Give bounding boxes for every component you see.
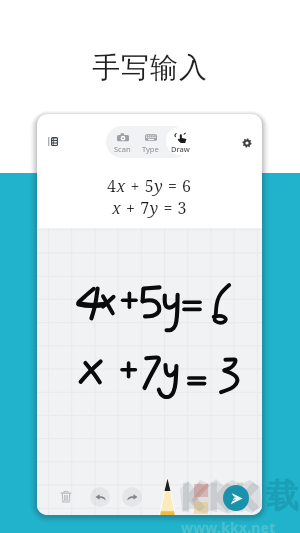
button[interactable]: Delete [54, 485, 78, 509]
button[interactable]: Draw [166, 127, 194, 155]
staticText: Type [142, 144, 159, 154]
button[interactable]: Settings [235, 131, 259, 155]
staticText: Draw [171, 144, 190, 154]
staticText: 载 [266, 475, 299, 516]
staticText: Scan [114, 144, 131, 154]
staticText: 4x + 5y = 6 [107, 175, 192, 197]
staticText: x + 7y = 3 [112, 197, 188, 219]
button[interactable]: History [40, 129, 65, 154]
staticText: 手写输入 [0, 50, 300, 85]
button[interactable]: Submit [223, 485, 249, 511]
button[interactable]: Redo [122, 487, 142, 507]
button[interactable]: Undo [90, 487, 110, 507]
staticText: www.kkx.net [181, 518, 276, 533]
button[interactable]: Type [137, 126, 163, 158]
button[interactable]: Scan [109, 126, 135, 158]
button[interactable]: Pen tool [160, 478, 175, 515]
